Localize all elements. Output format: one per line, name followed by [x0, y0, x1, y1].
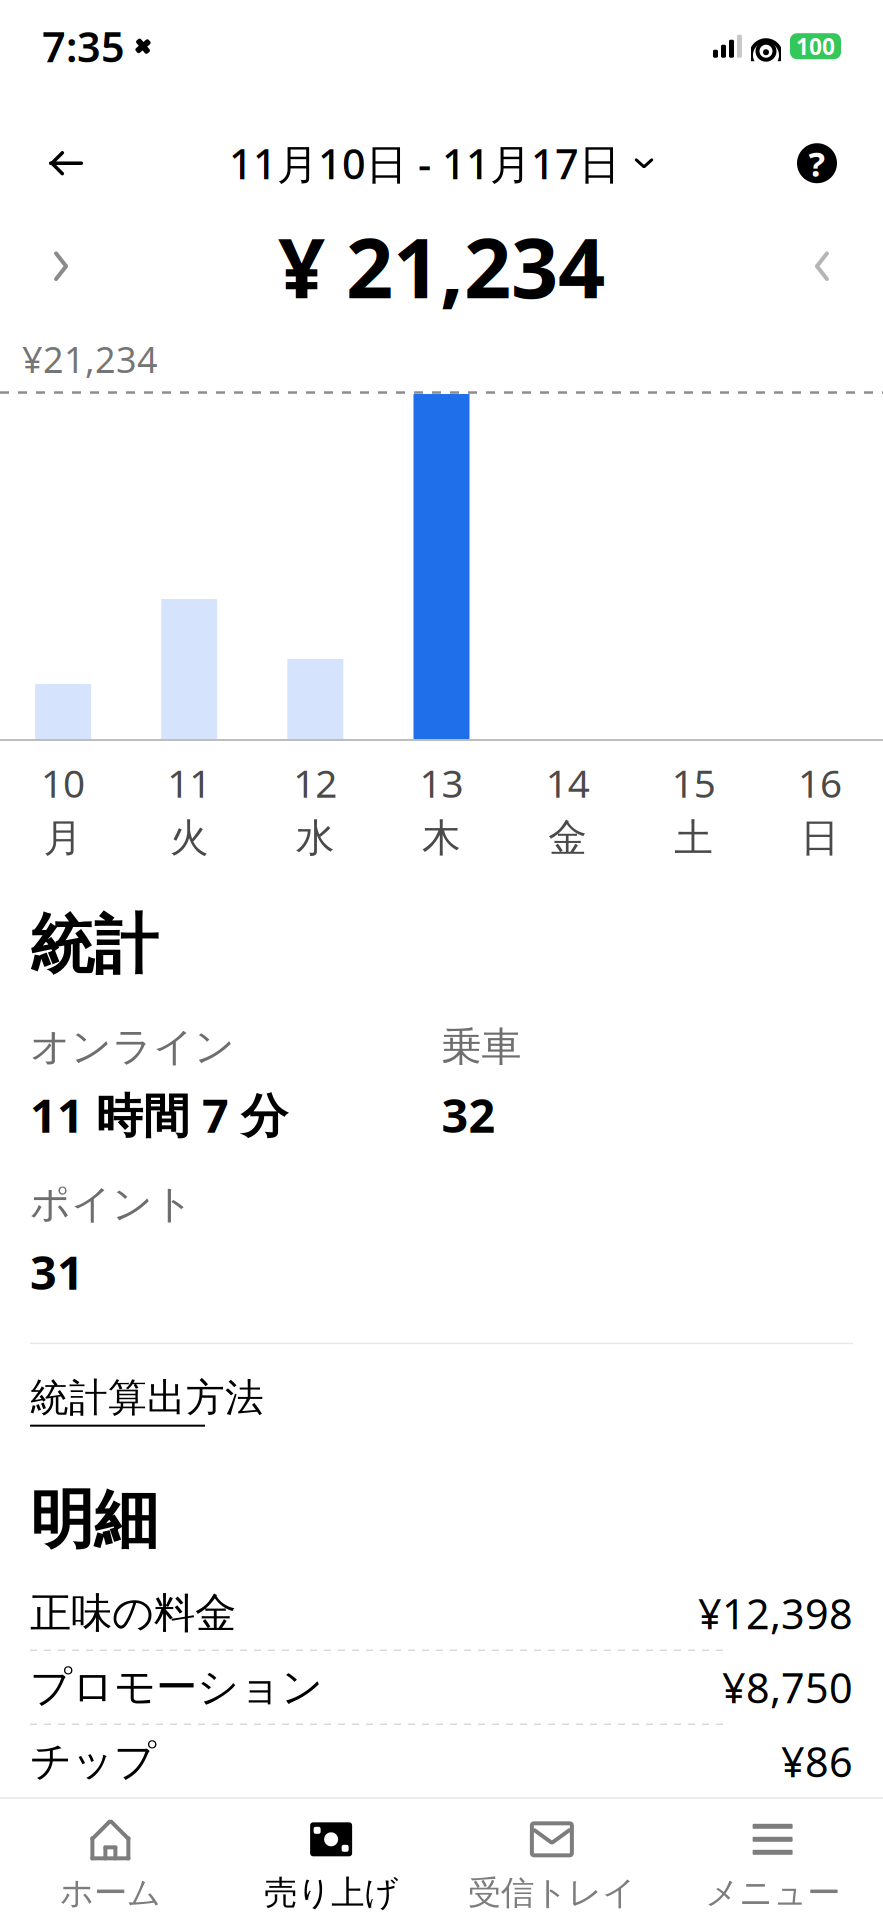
staticText: 16 [798, 757, 842, 808]
staticText: 受信トレイ [468, 1872, 636, 1913]
button[interactable]: ヘルプ [791, 137, 843, 189]
staticText: 日 [800, 814, 839, 862]
staticText: ¥86 [781, 1734, 853, 1789]
staticText: 100 [796, 31, 835, 61]
button[interactable]: 次の週 [787, 231, 857, 301]
staticText: 32 [441, 1084, 495, 1146]
button[interactable]: 戻る [40, 137, 92, 189]
staticText: オンライン [30, 1022, 235, 1072]
button[interactable]: 11月10日 - 11月17日 [221, 126, 662, 201]
staticText: 乗車 [441, 1022, 521, 1072]
staticText: 14 [546, 757, 590, 808]
staticText: 15 [672, 757, 716, 808]
staticText: ¥ 21,234 [278, 211, 605, 321]
staticText: 統計 [30, 906, 158, 984]
staticText: 11 [167, 757, 211, 808]
staticText: 土 [674, 814, 713, 862]
staticText: 12 [293, 757, 337, 808]
staticText: ¥12,398 [698, 1586, 853, 1641]
button[interactable]: メニュー [662, 1802, 883, 1920]
button[interactable]: 統計算出方法 [30, 1370, 264, 1431]
staticText: 31 [30, 1241, 84, 1303]
staticText: 正味の料金 [30, 1588, 236, 1639]
button[interactable]: 前の週 [26, 231, 96, 301]
button[interactable]: ホーム [0, 1802, 221, 1920]
staticText: ¥21,234 [22, 335, 158, 383]
staticText: 11 時間 7 分 [30, 1084, 288, 1146]
button[interactable]: 受信トレイ [441, 1802, 662, 1920]
staticText: 10 [41, 757, 85, 808]
staticText: ¥8,750 [722, 1660, 853, 1715]
staticText: 統計算出方法 [30, 1374, 264, 1422]
staticText: ポイント [30, 1180, 194, 1229]
staticText: 水 [296, 814, 335, 862]
staticText: 月 [44, 814, 83, 862]
staticText: メニュー [705, 1872, 840, 1913]
staticText: プロモーション [30, 1662, 323, 1713]
staticText: 13 [419, 757, 463, 808]
staticText: 7:35 [42, 19, 125, 74]
button[interactable]: 売り上げ [221, 1802, 442, 1920]
staticText: 木 [422, 814, 461, 862]
staticText: ホーム [60, 1872, 161, 1913]
staticText: チップ [30, 1736, 156, 1787]
staticText: ? [808, 140, 825, 186]
staticText: 火 [170, 814, 209, 862]
staticText: 金 [548, 814, 587, 862]
staticText: 11月10日 - 11月17日 [229, 136, 620, 191]
staticText: 売り上げ [264, 1872, 398, 1913]
staticText: 明細 [30, 1481, 158, 1559]
